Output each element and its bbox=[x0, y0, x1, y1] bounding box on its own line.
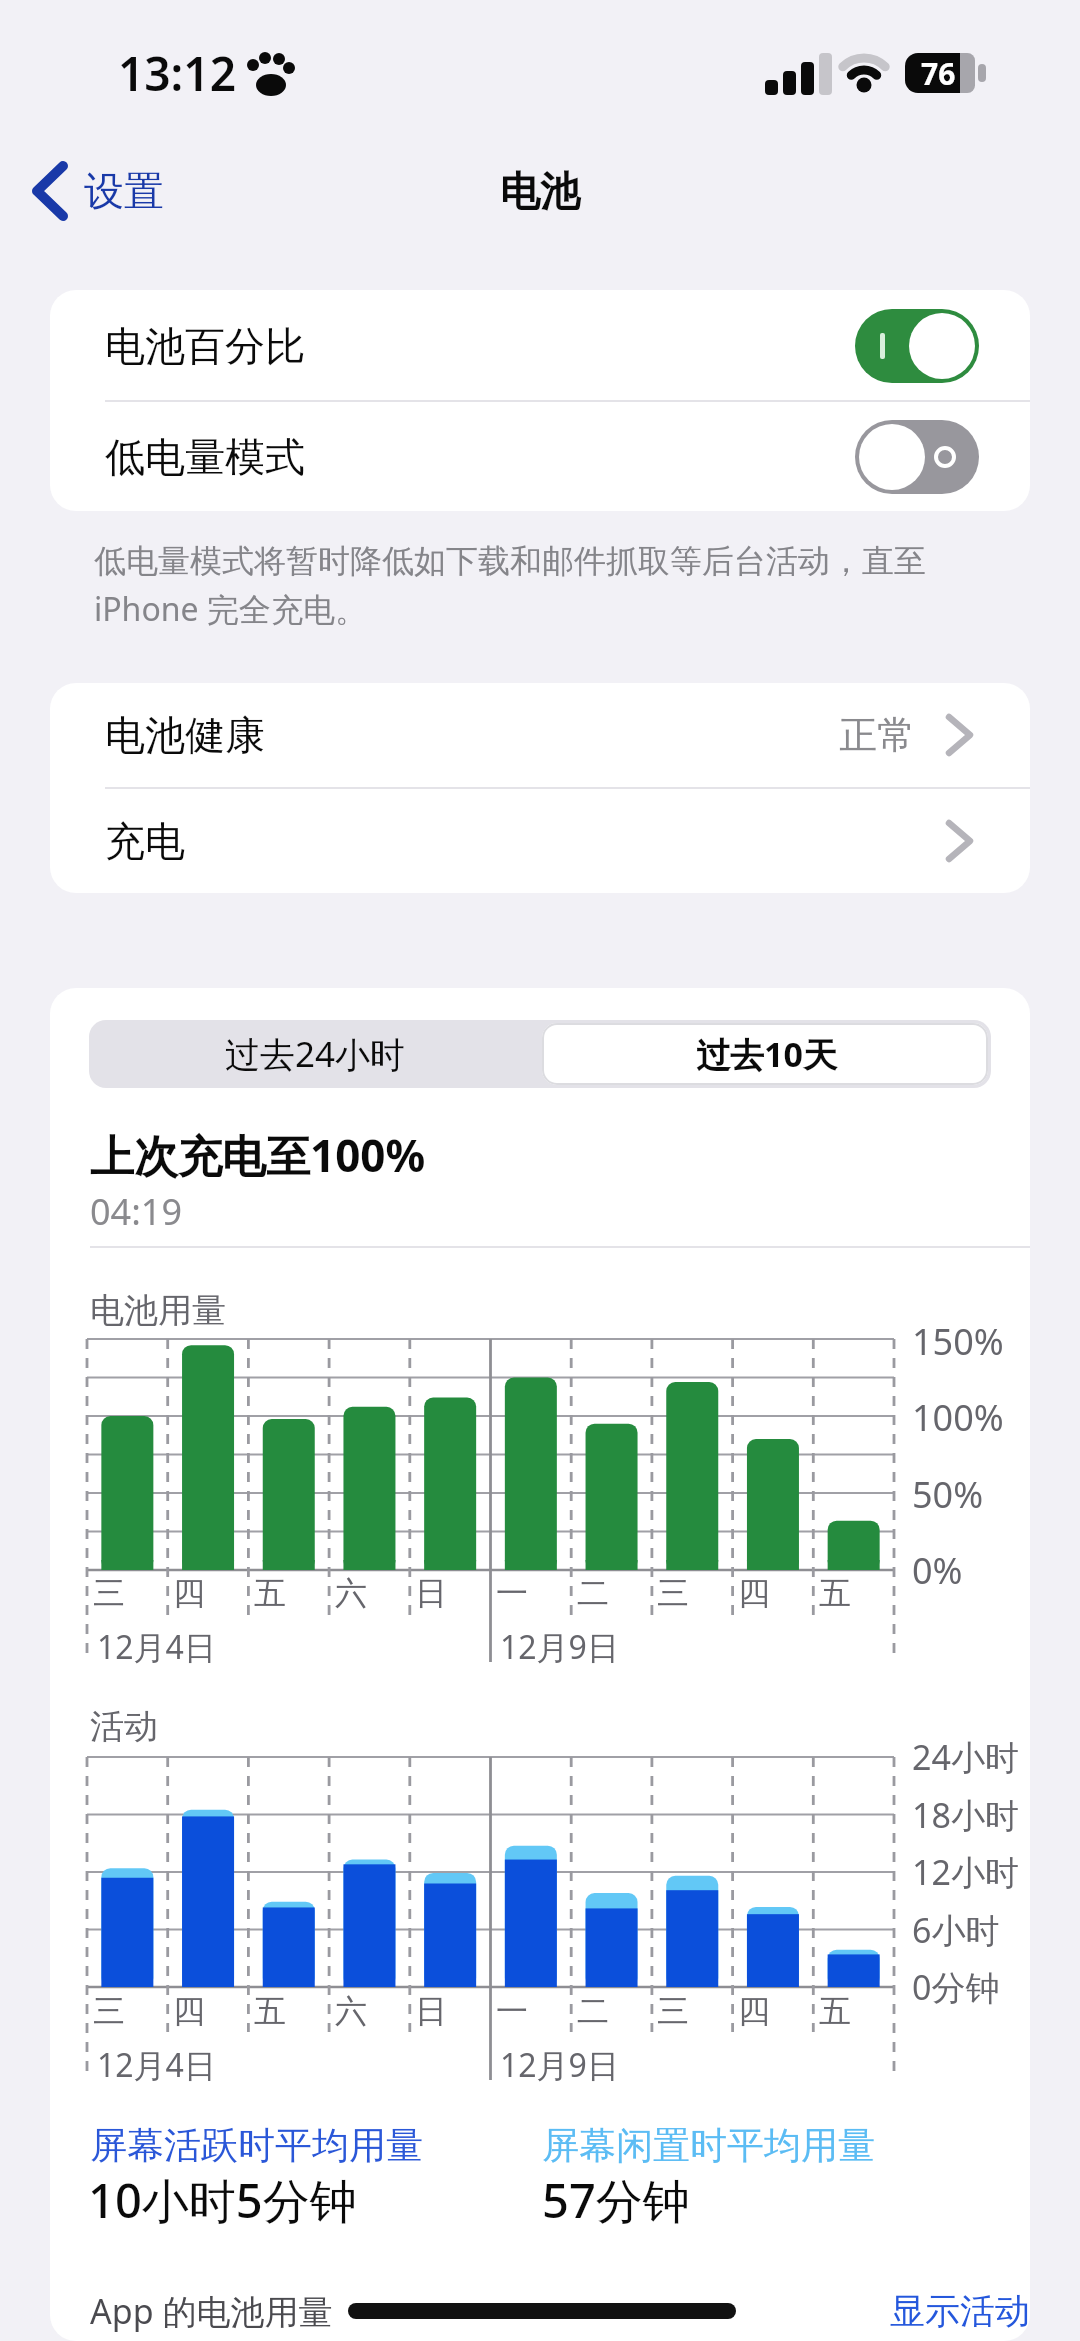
staticText: 12月4日 bbox=[97, 1625, 216, 1669]
staticText: 一 bbox=[496, 1991, 528, 2031]
staticText: 上次充电至100% bbox=[90, 1125, 426, 1185]
button[interactable] bbox=[50, 402, 1030, 511]
staticText: 设置 bbox=[84, 166, 164, 216]
staticText: 12月9日 bbox=[500, 2043, 619, 2087]
staticText: 电池百分比 bbox=[105, 321, 305, 371]
staticText: 显示活动 bbox=[890, 2289, 1030, 2333]
staticText: 12月9日 bbox=[500, 1625, 619, 1669]
staticText: 四 bbox=[738, 1991, 770, 2031]
staticText: 三 bbox=[93, 1573, 125, 1613]
staticText: 150% bbox=[912, 1317, 1004, 1366]
staticText: 10小时5分钟 bbox=[88, 2168, 357, 2232]
staticText: 屏幕活跃时平均用量 bbox=[90, 2122, 423, 2169]
staticText: 五 bbox=[254, 1991, 286, 2031]
button[interactable] bbox=[50, 290, 1030, 400]
staticText: 屏幕闲置时平均用量 bbox=[542, 2122, 875, 2169]
button[interactable]: 显示活动 bbox=[830, 2271, 1030, 2341]
button[interactable] bbox=[89, 1020, 540, 1088]
staticText: 充电 bbox=[105, 816, 185, 866]
staticText: 五 bbox=[254, 1573, 286, 1613]
button[interactable] bbox=[855, 309, 979, 383]
button[interactable] bbox=[542, 1023, 988, 1085]
staticText: 四 bbox=[173, 1991, 205, 2031]
staticText: 50% bbox=[912, 1470, 984, 1519]
staticText: 低电量模式 bbox=[105, 432, 305, 482]
staticText: 0% bbox=[912, 1546, 963, 1595]
staticText: 六 bbox=[335, 1573, 367, 1613]
staticText: 一 bbox=[496, 1573, 528, 1613]
staticText: 电池 bbox=[500, 166, 580, 216]
staticText: 正常 bbox=[839, 711, 915, 759]
staticText: 0分钟 bbox=[912, 1964, 1000, 2010]
staticText: 六 bbox=[335, 1991, 367, 2031]
staticText: 五 bbox=[819, 1991, 851, 2031]
staticText: 100% bbox=[912, 1393, 1004, 1442]
staticText: 过去24小时 bbox=[225, 1030, 406, 1078]
staticText: 电池健康 bbox=[105, 710, 265, 760]
staticText: 二 bbox=[577, 1573, 609, 1613]
staticText: 6小时 bbox=[912, 1907, 1000, 1953]
staticText: 04:19 bbox=[90, 1187, 183, 1236]
button[interactable] bbox=[50, 789, 1030, 893]
staticText: 过去10天 bbox=[696, 1031, 837, 1077]
staticText: 三 bbox=[657, 1573, 689, 1613]
button[interactable] bbox=[30, 155, 180, 227]
staticText: 日 bbox=[415, 1991, 447, 2031]
staticText: 12月4日 bbox=[97, 2043, 216, 2087]
staticText: 五 bbox=[819, 1573, 851, 1613]
staticText: 18小时 bbox=[912, 1792, 1019, 1838]
staticText: 三 bbox=[657, 1991, 689, 2031]
staticText: 三 bbox=[93, 1991, 125, 2031]
staticText: App 的电池用量 bbox=[90, 2288, 333, 2334]
staticText: 二 bbox=[577, 1991, 609, 2031]
staticText: 24小时 bbox=[912, 1734, 1019, 1780]
button[interactable] bbox=[50, 683, 1030, 787]
staticText: 76 bbox=[921, 53, 956, 94]
staticText: 57分钟 bbox=[542, 2168, 690, 2232]
staticText: iPhone 完全充电。 bbox=[94, 587, 367, 631]
staticText: 12小时 bbox=[912, 1849, 1019, 1895]
staticText: 活动 bbox=[90, 1705, 158, 1748]
staticText: 低电量模式将暂时降低如下载和邮件抓取等后台活动，直至 bbox=[94, 541, 926, 581]
staticText: 日 bbox=[415, 1573, 447, 1613]
staticText: 电池用量 bbox=[90, 1289, 226, 1332]
staticText: 四 bbox=[738, 1573, 770, 1613]
staticText: 13:12 bbox=[118, 42, 236, 105]
button[interactable] bbox=[855, 420, 979, 494]
staticText: 四 bbox=[173, 1573, 205, 1613]
